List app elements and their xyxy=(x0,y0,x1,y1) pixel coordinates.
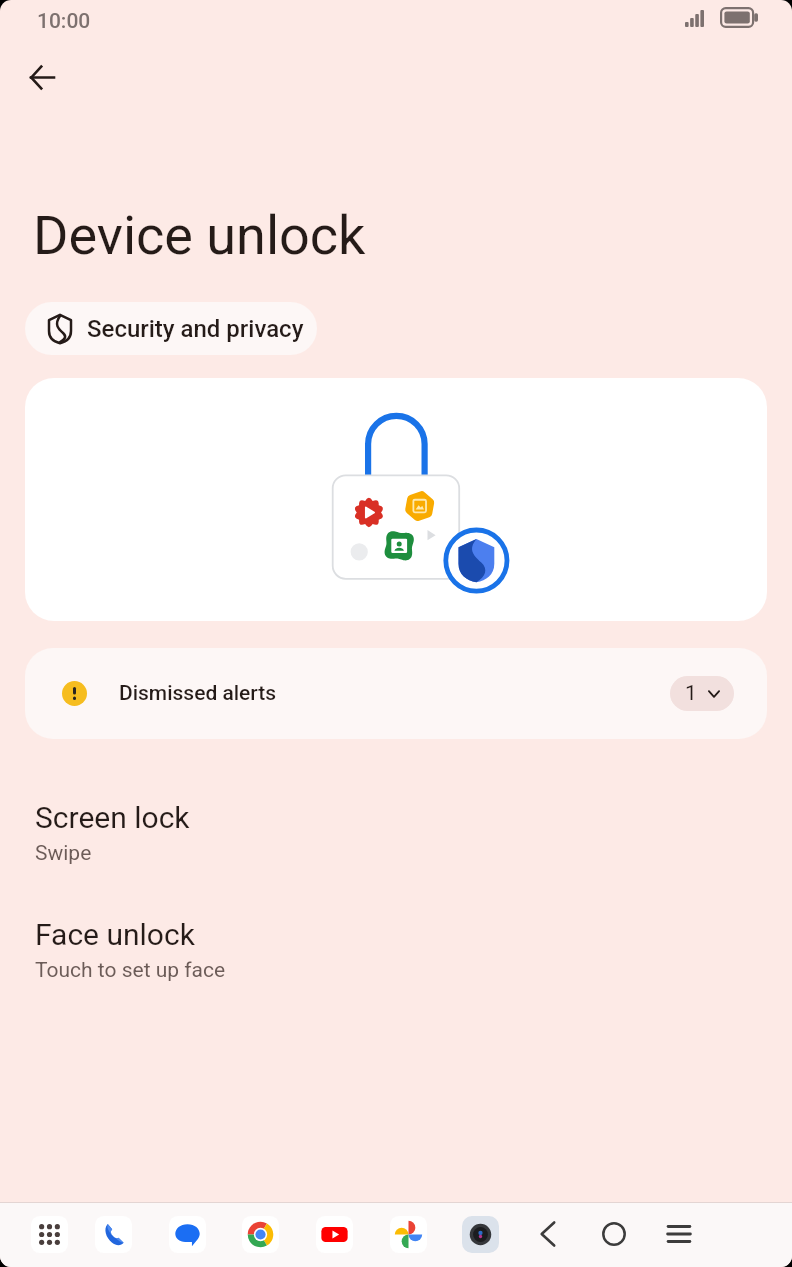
staticText: Screen lock xyxy=(35,800,190,835)
button[interactable]: Dismissed alerts xyxy=(25,648,767,739)
staticText: Swipe xyxy=(35,841,92,866)
button[interactable]: Screen lock xyxy=(0,784,792,886)
button[interactable]: YouTube xyxy=(308,1208,360,1260)
button[interactable]: Phone xyxy=(87,1208,139,1260)
button[interactable]: Camera xyxy=(454,1208,506,1260)
button[interactable]: Chrome xyxy=(234,1208,286,1260)
button[interactable]: 1 xyxy=(670,676,734,711)
staticText: Dismissed alerts xyxy=(119,681,277,706)
staticText: 1 xyxy=(685,681,697,706)
button[interactable]: Back xyxy=(522,1208,574,1260)
staticText: Security and privacy xyxy=(87,315,304,343)
button[interactable]: Face unlock xyxy=(0,901,792,1003)
staticText: Face unlock xyxy=(35,917,195,952)
button[interactable]: Home xyxy=(588,1208,640,1260)
button[interactable]: Recent apps xyxy=(653,1208,705,1260)
staticText: 10:00 xyxy=(37,9,91,34)
staticText: Device unlock xyxy=(33,204,366,267)
button[interactable]: Back xyxy=(14,49,70,105)
button[interactable]: Apps xyxy=(23,1208,75,1260)
button[interactable]: Photos xyxy=(382,1208,434,1260)
button[interactable]: Messages xyxy=(161,1208,213,1260)
button[interactable]: Security and privacy xyxy=(25,302,317,355)
staticText: Touch to set up face xyxy=(35,958,226,983)
